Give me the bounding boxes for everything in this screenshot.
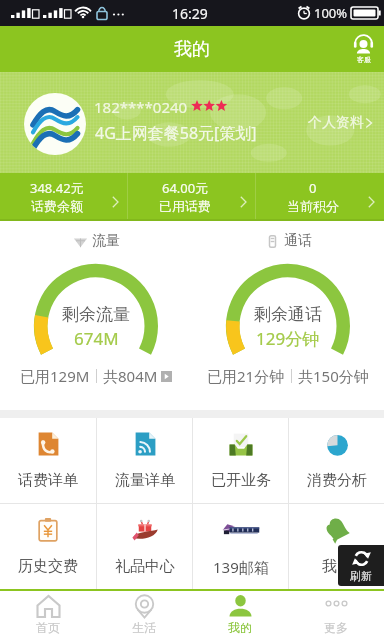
button[interactable]: 流量详单 bbox=[97, 418, 192, 503]
staticText: 我的 bbox=[228, 620, 252, 635]
staticText: 16:29 bbox=[172, 4, 208, 23]
button[interactable]: 0 bbox=[256, 173, 384, 221]
button[interactable]: 首页 bbox=[0, 591, 96, 640]
staticText: 历史交费 bbox=[18, 557, 78, 576]
staticText: 100% bbox=[314, 4, 348, 22]
staticText: 当前积分 bbox=[287, 198, 339, 214]
staticText: 刷新 bbox=[350, 569, 372, 583]
staticText: 剩余通话 bbox=[254, 304, 322, 325]
staticText: 674M bbox=[74, 327, 119, 350]
staticText: 通话 bbox=[284, 232, 312, 250]
staticText: 已用21分钟 bbox=[207, 366, 285, 386]
staticText: 剩余流量 bbox=[62, 304, 130, 325]
staticText: 139邮箱 bbox=[213, 557, 269, 577]
staticText: 首页 bbox=[36, 620, 60, 635]
staticText: 话费余额 bbox=[31, 198, 83, 214]
staticText: 共804M bbox=[103, 366, 158, 386]
staticText: 共150分钟 bbox=[298, 366, 369, 386]
button[interactable]: 刷新 Refresh bbox=[338, 545, 384, 586]
staticText: 客服 bbox=[357, 55, 371, 64]
staticText: 已开业务 bbox=[211, 471, 271, 490]
button[interactable]: 已开业务 bbox=[193, 418, 288, 503]
staticText: 消费分析 bbox=[307, 471, 367, 490]
staticText: 已用129M bbox=[20, 366, 90, 386]
staticText: 我的 bbox=[174, 38, 210, 61]
button[interactable]: 64.00元 bbox=[128, 173, 256, 221]
staticText: 礼品中心 bbox=[115, 557, 175, 576]
staticText: 0 bbox=[309, 179, 317, 197]
button[interactable]: 个人资料 bbox=[304, 110, 377, 136]
button[interactable]: 我的 bbox=[192, 591, 288, 640]
staticText: 我的 bbox=[322, 557, 352, 576]
staticText: 流量详单 bbox=[115, 471, 175, 490]
staticText: 348.42元 bbox=[30, 179, 84, 197]
staticText: 个人资料 bbox=[308, 114, 364, 132]
button[interactable]: 话费详单 bbox=[0, 418, 96, 503]
staticText: 流量 bbox=[92, 232, 120, 250]
staticText: 64.00元 bbox=[162, 179, 209, 197]
button[interactable]: 更多 bbox=[288, 591, 384, 640]
button[interactable]: 流量 bbox=[0, 221, 192, 410]
staticText: 182****0240 bbox=[94, 97, 188, 117]
button[interactable]: 348.42元 bbox=[0, 173, 128, 221]
button[interactable]: 139邮箱 bbox=[193, 504, 288, 589]
staticText: 更多 bbox=[324, 620, 348, 635]
button[interactable]: 客服 Customer service bbox=[349, 32, 378, 66]
button[interactable]: 消费分析 bbox=[289, 418, 384, 503]
button[interactable]: 我的 bbox=[289, 504, 384, 589]
staticText: 生活 bbox=[132, 620, 156, 635]
button[interactable]: 礼品中心 bbox=[97, 504, 192, 589]
staticText: 话费详单 bbox=[18, 471, 78, 490]
staticText: 4G上网套餐58元[策划] bbox=[95, 122, 257, 144]
staticText: 已用话费 bbox=[159, 198, 211, 214]
staticText: 129分钟 bbox=[256, 327, 320, 350]
button[interactable]: 通话 bbox=[192, 221, 384, 410]
button[interactable]: 生活 bbox=[96, 591, 192, 640]
button[interactable]: 历史交费 bbox=[0, 504, 96, 589]
